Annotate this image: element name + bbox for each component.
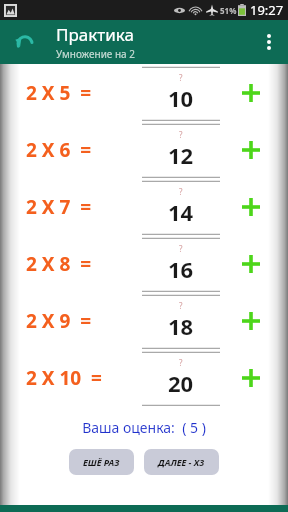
staticText: 2 X 9 = (26, 308, 92, 334)
button[interactable]: Answer 10 (142, 64, 220, 121)
staticText: 12 (168, 140, 194, 170)
staticText: ? (179, 186, 183, 197)
button[interactable]: Answer 18 (142, 292, 220, 349)
button[interactable]: ДАЛЕЕ - X3 (144, 449, 219, 475)
staticText: 16 (168, 254, 194, 284)
button[interactable]: Add (234, 247, 268, 281)
button[interactable]: Add (234, 76, 268, 110)
staticText: 10 (168, 83, 194, 113)
staticText: Умножение на 2 (56, 47, 135, 61)
staticText: 51% (220, 5, 237, 16)
button[interactable]: Answer 20 (142, 349, 220, 406)
button[interactable]: More options (250, 23, 288, 61)
staticText: 20 (168, 368, 194, 398)
staticText: 18 (168, 311, 194, 341)
staticText: ? (179, 243, 183, 254)
button[interactable]: Add (234, 361, 268, 395)
button[interactable]: Answer 16 (142, 235, 220, 292)
staticText: ? (179, 357, 183, 368)
staticText: 19:27 (250, 1, 284, 19)
staticText: ДАЛЕЕ - X3 (158, 456, 205, 468)
staticText: 14 (168, 197, 194, 227)
button[interactable]: Answer 12 (142, 121, 220, 178)
button[interactable]: ЕШЁ РАЗ (69, 449, 134, 475)
staticText: ? (179, 300, 183, 311)
staticText: Практика (56, 23, 134, 46)
staticText: ? (179, 129, 183, 140)
staticText: 2 X 5 = (26, 80, 92, 106)
staticText: Ваша оценка: ( 5 ) (20, 418, 268, 437)
button[interactable]: Answer 14 (142, 178, 220, 235)
staticText: 2 X 10 = (26, 365, 102, 391)
staticText: 2 X 7 = (26, 194, 92, 220)
staticText: ? (179, 72, 183, 83)
button[interactable]: Add (234, 190, 268, 224)
button[interactable]: Add (234, 133, 268, 167)
staticText: 2 X 6 = (26, 137, 92, 163)
button[interactable]: Back (6, 23, 44, 61)
staticText: ЕШЁ РАЗ (83, 456, 120, 468)
staticText: 2 X 8 = (26, 251, 92, 277)
button[interactable]: Add (234, 304, 268, 338)
